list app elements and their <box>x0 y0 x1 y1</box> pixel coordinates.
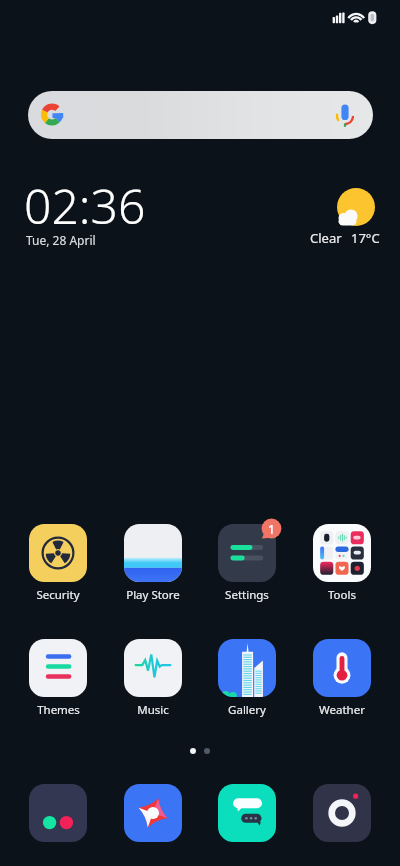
button[interactable]: Weather <box>304 639 380 718</box>
staticText: Themes <box>37 702 80 718</box>
button[interactable]: Play Store <box>115 524 191 603</box>
button[interactable]: Clear <box>310 188 380 247</box>
staticText: Play Store <box>126 587 180 603</box>
button[interactable]: 02:36 <box>24 173 310 254</box>
button[interactable]: 1 <box>209 524 285 603</box>
staticText: 02:36 <box>24 173 146 238</box>
staticText: 17°C <box>351 229 380 247</box>
staticText: Settings <box>225 587 269 603</box>
button[interactable]: Themes <box>20 639 96 718</box>
staticText: Security <box>36 587 80 603</box>
staticText: Gallery <box>228 702 266 718</box>
button[interactable]: Gallery <box>209 639 285 718</box>
button[interactable]: Music <box>115 639 191 718</box>
button[interactable]: Contacts <box>20 784 96 842</box>
button[interactable]: Tools <box>304 524 380 603</box>
staticText: Tue, 28 April <box>26 232 96 248</box>
button[interactable] <box>28 91 373 139</box>
staticText: Weather <box>319 702 365 718</box>
staticText: 1 <box>268 521 275 537</box>
staticText: Clear <box>310 229 342 247</box>
button[interactable]: Camera <box>304 784 380 842</box>
button[interactable]: Messages <box>209 784 285 842</box>
staticText: Tools <box>328 587 356 603</box>
button[interactable]: Browser <box>115 784 191 842</box>
staticText: Music <box>137 702 169 718</box>
button[interactable]: Security <box>20 524 96 603</box>
